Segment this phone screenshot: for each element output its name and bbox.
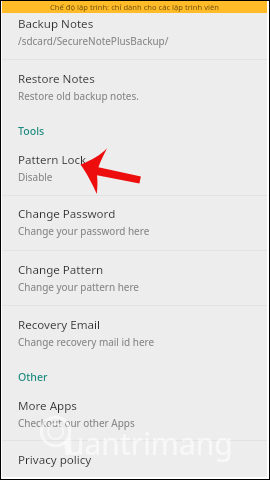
button[interactable]: More Apps [2,386,267,440]
staticText: Tools [18,124,45,138]
staticText: Change your password here [18,224,150,238]
staticText: Pattern Lock [18,152,87,168]
staticText: /sdcard/SecureNotePlusBackup/ [18,34,169,48]
staticText: More Apps [18,398,77,414]
staticText: Change Password [18,206,116,222]
staticText: Other [18,370,48,384]
staticText: Backup Notes [18,16,94,32]
staticText: Change recovery mail id here [18,335,155,349]
staticText: Change your pattern here [18,280,139,294]
button[interactable]: Privacy policy [2,440,267,480]
staticText: Chế độ lập trình: chỉ dành cho các lập t… [50,2,219,12]
button[interactable]: Backup Notes [2,4,267,58]
staticText: Privacy policy [18,452,92,468]
staticText: Recovery Email [18,317,101,333]
button[interactable]: Change Password [2,194,267,248]
staticText: uantrimang [66,423,233,464]
staticText: Change Pattern [18,262,104,278]
staticText: Restore Notes [18,71,95,87]
staticText: Disable [18,170,53,184]
button[interactable]: Recovery Email [2,305,267,359]
staticText: Checkout our other Apps [18,416,135,430]
button[interactable]: Pattern Lock [2,140,267,194]
staticText: Restore old backup notes. [18,89,139,103]
button[interactable]: Change Pattern [2,250,267,304]
button[interactable]: Restore Notes [2,59,267,113]
